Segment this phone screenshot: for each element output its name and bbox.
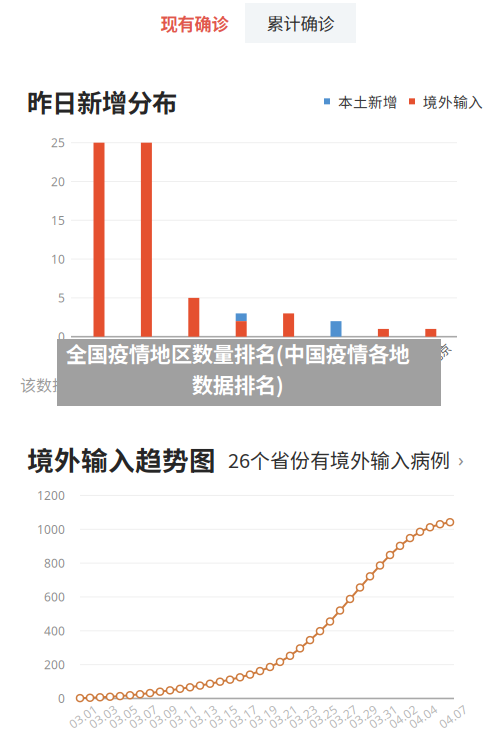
staticText: 03.05 — [107, 708, 138, 724]
staticText: 03.13 — [187, 708, 218, 724]
staticText: 上海 — [96, 345, 120, 362]
staticText: 昨日新增分布 — [27, 83, 177, 120]
staticText: 全国疫情地区数量排名(中国疫情各地数据排名) — [65, 338, 409, 399]
staticText: 03.15 — [207, 708, 238, 724]
staticText: 03.01 — [67, 708, 98, 724]
staticText: 200 — [44, 657, 65, 673]
staticText: 陕西 — [380, 345, 404, 362]
staticText: 20 — [51, 173, 65, 189]
staticText: 03.21 — [267, 708, 298, 724]
staticText: 600 — [44, 589, 65, 605]
staticText: 1200 — [37, 487, 65, 503]
staticText: 03.19 — [247, 708, 278, 724]
staticText: 03.09 — [147, 708, 178, 724]
staticText: 03.23 — [287, 708, 318, 724]
staticText: 15 — [51, 212, 65, 228]
staticText: 境外输入趋势图 — [27, 440, 216, 478]
staticText: 400 — [44, 623, 65, 639]
staticText: 25 — [51, 135, 65, 151]
staticText: 03.03 — [87, 708, 118, 724]
button[interactable]: 26个省份有境外输入病例 — [228, 445, 464, 474]
button[interactable]: 现有确诊 — [144, 3, 245, 43]
staticText: 03.31 — [367, 708, 398, 724]
staticText: 境外输入 — [423, 91, 483, 112]
staticText: 1000 — [37, 521, 65, 537]
staticText: 现有确诊 — [160, 10, 228, 36]
staticText: 03.17 — [227, 708, 258, 724]
staticText: 03.29 — [347, 708, 378, 724]
button[interactable]: 累计确诊 — [245, 3, 356, 43]
staticText: 本土新增 — [338, 91, 398, 112]
staticText: 03.27 — [327, 708, 358, 724]
staticText: › — [458, 447, 464, 472]
staticText: 浙江 — [238, 345, 262, 362]
staticText: 03.07 — [127, 708, 158, 724]
staticText: 天津 — [333, 345, 357, 362]
staticText: 福建 — [286, 345, 310, 362]
staticText: 累计确诊 — [266, 10, 334, 36]
staticText: 04.02 — [387, 708, 418, 724]
staticText: 0 — [58, 329, 65, 345]
staticText: 0 — [58, 690, 65, 706]
staticText: 该数据不包含港澳台地区的新增确诊病例 — [20, 373, 308, 396]
staticText: 26个省份有境外输入病例 — [228, 445, 450, 474]
staticText: 04.07 — [437, 708, 468, 724]
staticText: 5 — [58, 290, 65, 306]
staticText: 800 — [44, 555, 65, 571]
staticText: 10 — [51, 251, 65, 267]
staticText: 03.11 — [167, 708, 198, 724]
staticText: 04.04 — [407, 708, 438, 724]
staticText: 北京 — [428, 345, 452, 362]
staticText: 03.25 — [307, 708, 338, 724]
staticText: 广东 — [143, 345, 167, 362]
staticText: 江苏 — [191, 345, 215, 362]
